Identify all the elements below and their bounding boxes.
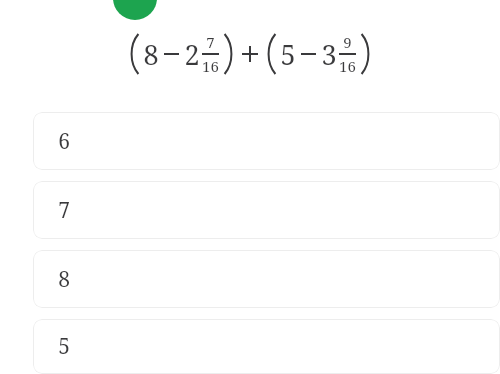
button[interactable]: 5 (33, 319, 500, 374)
staticText: 16 (202, 56, 219, 76)
staticText: 8 (143, 36, 159, 73)
staticText: 5 (280, 36, 296, 73)
button[interactable]: 6 (33, 112, 500, 170)
staticText: 2 (184, 36, 200, 73)
button[interactable]: 7 (33, 181, 500, 239)
staticText: 8 (58, 265, 70, 294)
staticText: 9 (343, 32, 352, 52)
staticText: 7 (58, 196, 70, 225)
button[interactable]: 8 (33, 250, 500, 308)
other: Correct (113, 0, 157, 20)
staticText: 5 (58, 332, 70, 361)
staticText: 6 (58, 127, 70, 156)
staticText: 16 (339, 56, 356, 76)
staticText: 7 (206, 32, 215, 52)
staticText: 3 (321, 36, 337, 73)
